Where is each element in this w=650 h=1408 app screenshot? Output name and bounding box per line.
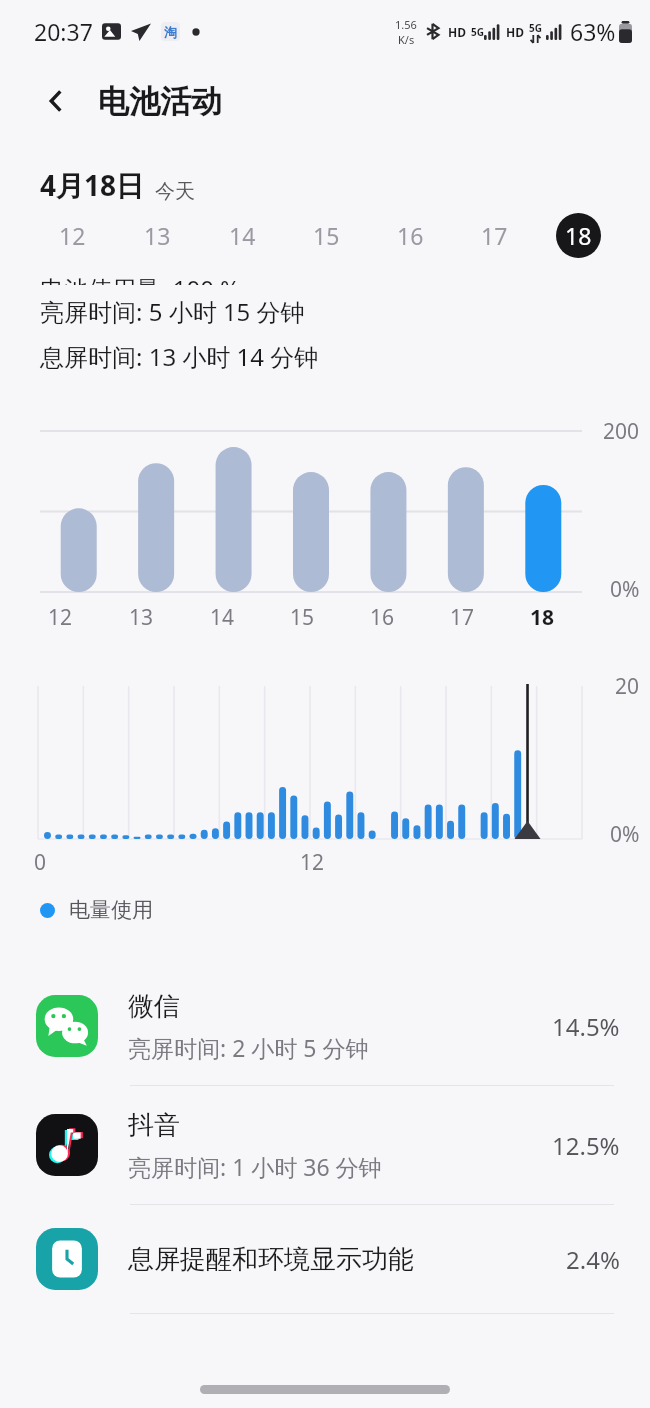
button[interactable]: 抖音 <box>0 1086 650 1204</box>
staticText: 200 <box>603 417 640 446</box>
button[interactable]: 息屏提醒和环境显示功能 <box>0 1205 650 1313</box>
staticText: 17 <box>450 603 475 632</box>
button[interactable]: 15 <box>284 204 368 266</box>
staticText: HD <box>448 24 466 40</box>
button[interactable]: 13 <box>115 204 200 266</box>
staticText: 63% <box>570 16 616 47</box>
staticText: 5G <box>471 25 484 39</box>
staticText: 13 <box>144 220 171 251</box>
staticText: 20 <box>615 672 640 701</box>
staticText: 18 <box>530 603 555 632</box>
staticText: 12 <box>48 603 73 632</box>
staticText: 14.5% <box>552 1010 620 1043</box>
staticText: 14 <box>229 220 256 251</box>
staticText: 18 <box>565 220 592 251</box>
staticText: K/s <box>398 32 415 47</box>
button[interactable]: 电量使用 <box>40 897 650 923</box>
staticText: 16 <box>370 603 395 632</box>
staticText: 电池使用量: 100 % <box>40 272 241 285</box>
staticText: 微信 <box>128 990 180 1023</box>
staticText: 16 <box>397 220 424 251</box>
staticText: 0% <box>610 575 640 604</box>
staticText: HD <box>506 24 524 40</box>
staticText: 17 <box>481 220 508 251</box>
staticText: 抖音 <box>128 1109 180 1142</box>
staticText: 亮屏时间: 2 小时 5 分钟 <box>128 1032 369 1063</box>
staticText: 12 <box>300 848 325 877</box>
button[interactable]: 14 <box>200 204 284 266</box>
staticText: 今天 <box>155 179 195 204</box>
staticText: 电池活动 <box>98 82 222 121</box>
button[interactable]: 16 <box>368 204 452 266</box>
button[interactable]: 18 <box>536 204 620 266</box>
staticText: 12.5% <box>552 1129 620 1162</box>
staticText: 2.4% <box>566 1243 620 1276</box>
staticText: 15 <box>313 220 340 251</box>
staticText: 电量使用 <box>69 897 153 923</box>
staticText: 15 <box>290 603 315 632</box>
staticText: 20:37 <box>34 16 93 47</box>
staticText: 亮屏时间: 1 小时 36 分钟 <box>128 1151 382 1182</box>
staticText: 0% <box>610 820 640 849</box>
staticText: 4月18日 <box>40 166 145 204</box>
button[interactable]: 微信 <box>0 967 650 1085</box>
staticText: 14 <box>210 603 235 632</box>
staticText: 息屏提醒和环境显示功能 <box>128 1243 414 1276</box>
button[interactable]: 12 <box>30 204 115 266</box>
staticText: 5G <box>529 21 542 35</box>
staticText: 亮屏时间: 5 小时 15 分钟 <box>40 295 305 328</box>
button[interactable]: 17 <box>452 204 536 266</box>
staticText: 淘 <box>164 24 177 40</box>
staticText: 13 <box>129 603 154 632</box>
staticText: 1.56 <box>395 17 417 32</box>
staticText: 息屏时间: 13 小时 14 分钟 <box>40 340 319 373</box>
staticText: 12 <box>59 220 86 251</box>
button[interactable]: Back <box>30 75 82 127</box>
staticText: 0 <box>34 848 47 877</box>
